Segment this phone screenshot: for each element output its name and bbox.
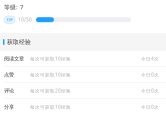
- button[interactable]: 阅读文章: [0, 51, 166, 67]
- staticText: 今日0次: [141, 72, 159, 78]
- staticText: 每次可获取10经验: [30, 104, 71, 110]
- staticText: 今日0次: [141, 104, 159, 110]
- button[interactable]: 点赞: [0, 67, 166, 83]
- button[interactable]: 分享: [0, 99, 166, 115]
- staticText: 每次可获取10经验: [30, 72, 71, 78]
- staticText: 等级: 7: [4, 3, 23, 11]
- staticText: 点赞: [4, 71, 14, 78]
- staticText: 获取经验: [7, 38, 31, 46]
- staticText: 阅读文章: [4, 55, 24, 62]
- staticText: 今日4次: [141, 56, 159, 62]
- staticText: 分享: [4, 104, 14, 110]
- staticText: EXP: [6, 17, 12, 22]
- staticText: 每次可获取10经验: [30, 56, 71, 62]
- staticText: 今日0次: [141, 88, 159, 94]
- button[interactable]: 评论: [0, 83, 166, 99]
- staticText: 评论: [4, 87, 14, 94]
- staticText: 每次可获取20经验: [30, 88, 71, 94]
- staticText: 10/50: [18, 16, 32, 23]
